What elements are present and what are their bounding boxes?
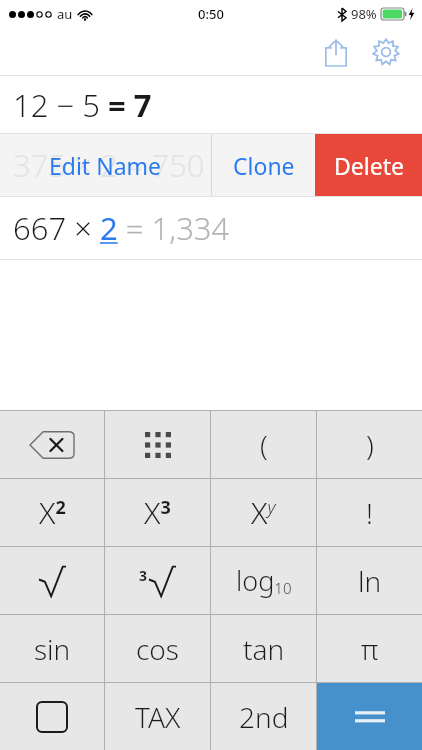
button[interactable]: X3 — [105, 479, 210, 546]
button[interactable]: Clone — [212, 134, 315, 196]
staticText: 12 − 5 = 7 — [13, 84, 152, 126]
staticText: Clone — [233, 150, 295, 181]
button[interactable]: Share — [314, 30, 358, 74]
button[interactable]: Square root — [0, 547, 104, 614]
staticText: π — [361, 630, 379, 668]
staticText: 2nd — [239, 698, 289, 736]
button[interactable]: Backspace — [0, 411, 104, 478]
button[interactable]: Xy — [211, 479, 316, 546]
staticText: ( — [260, 426, 268, 464]
staticText: Delete — [334, 150, 404, 181]
button[interactable]: sin — [0, 615, 104, 682]
staticText: 667 × 2 = 1,334 — [13, 207, 230, 249]
button[interactable]: ( — [211, 411, 316, 478]
staticText: 3 — [139, 566, 148, 585]
staticText: tan — [243, 630, 285, 668]
staticText: sin — [34, 630, 71, 668]
staticText: ! — [366, 494, 373, 532]
button[interactable]: 12 − 5 = 7 — [0, 76, 422, 133]
button[interactable]: ) — [317, 411, 422, 478]
staticText: log10 — [236, 562, 292, 599]
button[interactable]: π — [317, 615, 422, 682]
staticText: 98% — [351, 5, 377, 23]
button[interactable]: cos — [105, 615, 210, 682]
button[interactable]: Settings — [364, 30, 408, 74]
staticText: 375 × 2 = 750 — [13, 144, 205, 186]
button[interactable]: Equals — [317, 683, 422, 750]
button[interactable]: Delete — [315, 134, 422, 196]
staticText: Xy — [251, 492, 276, 533]
staticText: Edit Name — [49, 150, 162, 181]
button[interactable]: log10 — [211, 547, 316, 614]
button[interactable]: ! — [317, 479, 422, 546]
staticText: ln — [358, 562, 382, 600]
button[interactable]: TAX — [105, 683, 210, 750]
staticText: 0:50 — [198, 5, 224, 23]
button[interactable]: ln — [317, 547, 422, 614]
button[interactable]: Number pad — [105, 411, 210, 478]
button[interactable]: tan — [211, 615, 316, 682]
button[interactable]: Placeholder — [0, 683, 104, 750]
button[interactable]: Cube root — [105, 547, 210, 614]
staticText: au — [57, 5, 73, 23]
staticText: X2 — [39, 492, 66, 533]
button[interactable]: Edit Name — [0, 134, 211, 196]
staticText: ) — [366, 426, 374, 464]
button[interactable]: 2nd — [211, 683, 316, 750]
staticText: X3 — [144, 492, 171, 533]
staticText: cos — [136, 630, 179, 668]
staticText: TAX — [135, 698, 181, 736]
button[interactable]: X2 — [0, 479, 104, 546]
button[interactable]: 667 × 2 = 1,334 — [0, 197, 422, 259]
